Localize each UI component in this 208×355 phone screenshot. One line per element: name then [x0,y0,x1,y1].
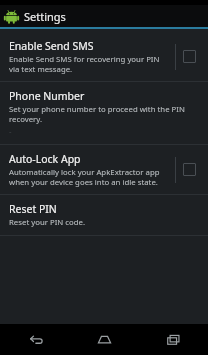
button[interactable]: Settings [0,5,208,27]
staticText: Auto-Lock App [9,152,81,166]
staticText: Reset your PIN code. [9,217,86,228]
staticText: Enable Send SMS [9,39,94,53]
button[interactable]: Back [0,324,70,355]
staticText: Settings [24,9,66,24]
button[interactable]: Toggle setting [183,50,196,63]
staticText: Automatically lock your ApkExtractor app… [9,167,171,187]
button[interactable]: Recent apps [139,324,208,355]
button[interactable]: Auto-Lock App [0,145,208,194]
staticText: Enable Send SMS for recovering your PIN … [9,54,171,74]
button[interactable]: Home [70,324,139,355]
staticText: Phone Number [9,89,85,103]
staticText: Reset PIN [9,202,57,216]
staticText: - [9,126,12,137]
button[interactable]: Reset PIN [0,195,208,235]
button[interactable]: Enable Send SMS [0,32,208,81]
staticText: Set your phone number to proceed with th… [9,104,202,124]
button[interactable]: Phone Number [0,82,208,144]
button[interactable]: Toggle setting [183,163,196,176]
